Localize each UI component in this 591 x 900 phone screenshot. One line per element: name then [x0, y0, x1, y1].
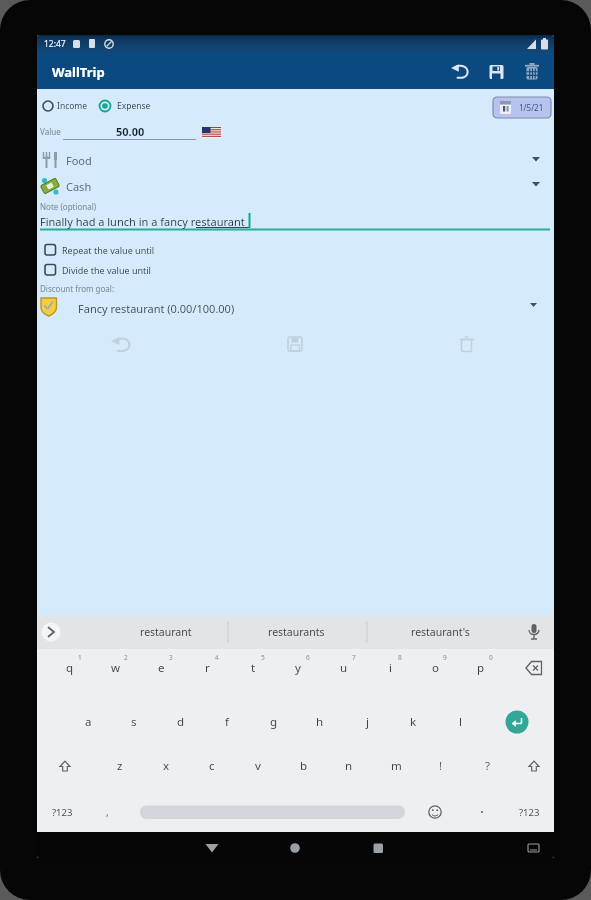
staticText: Food	[66, 153, 92, 168]
button[interactable]	[482, 58, 510, 86]
staticText: b	[300, 758, 308, 774]
staticText: Finally had a lunch in a fancy restauran…	[40, 214, 245, 229]
button[interactable]: u	[331, 658, 357, 678]
button[interactable]	[140, 805, 405, 820]
button[interactable]	[98, 97, 154, 115]
staticText: 8	[398, 653, 402, 662]
staticText: 12:47	[44, 38, 66, 50]
button[interactable]: !	[428, 756, 454, 776]
staticText: 6	[306, 653, 310, 662]
button[interactable]: f	[214, 712, 240, 732]
button[interactable]: restaurant's	[382, 622, 498, 642]
button[interactable]	[364, 835, 392, 855]
staticText: j	[366, 714, 369, 730]
button[interactable]: ?123	[507, 803, 551, 821]
staticText: h	[316, 714, 324, 730]
button[interactable]	[40, 148, 550, 171]
button[interactable]: p	[468, 658, 494, 678]
staticText: z	[117, 758, 123, 774]
button[interactable]: restaurants	[238, 622, 354, 642]
staticText: ?123	[519, 806, 540, 819]
button[interactable]: i	[377, 658, 403, 678]
staticText: restaurant's	[411, 625, 470, 639]
staticText: 7	[352, 653, 356, 662]
button[interactable]	[198, 835, 226, 855]
staticText: 50.00	[116, 124, 145, 139]
staticText: 2	[124, 653, 128, 662]
button[interactable]: l	[447, 712, 473, 732]
staticText: d	[177, 714, 185, 730]
button[interactable]: a	[75, 712, 101, 732]
button[interactable]	[506, 711, 528, 733]
staticText: v	[255, 758, 261, 774]
button[interactable]: ?	[474, 756, 500, 776]
staticText: Note (optional)	[40, 201, 97, 212]
staticText: e	[158, 660, 165, 676]
staticText: restaurant	[140, 625, 192, 639]
button[interactable]: n	[336, 756, 362, 776]
button[interactable]: t	[240, 658, 266, 678]
staticText: q	[66, 660, 74, 676]
staticText: i	[389, 660, 392, 676]
staticText: ?123	[52, 806, 73, 819]
staticText: n	[345, 758, 353, 774]
button[interactable]	[41, 97, 91, 115]
button[interactable]: b	[291, 756, 317, 776]
staticText: k	[410, 714, 417, 730]
staticText: ?	[485, 758, 490, 774]
button[interactable]: s	[121, 712, 147, 732]
staticText: w	[111, 660, 121, 676]
staticText: Divide the value until	[62, 264, 151, 276]
button[interactable]	[518, 58, 546, 86]
button[interactable]: y	[285, 658, 311, 678]
button[interactable]: v	[245, 756, 271, 776]
button[interactable]: m	[383, 756, 409, 776]
button[interactable]	[41, 241, 201, 259]
button[interactable]	[40, 174, 550, 197]
staticText: o	[432, 660, 439, 676]
staticText: 0	[489, 653, 493, 662]
button[interactable]: ?123	[40, 803, 84, 821]
staticText: !	[439, 758, 443, 774]
button[interactable]: h	[307, 712, 333, 732]
button[interactable]: j	[354, 712, 380, 732]
staticText: 1	[78, 653, 82, 662]
staticText: WallTrip	[52, 63, 105, 81]
staticText: y	[295, 660, 301, 676]
button[interactable]: restaurant	[111, 622, 221, 642]
staticText: 4	[215, 653, 219, 662]
staticText: Expense	[117, 100, 151, 112]
staticText: Cash	[66, 179, 92, 194]
staticText: c	[209, 758, 215, 774]
button[interactable]: d	[168, 712, 194, 732]
staticText: Income	[57, 100, 88, 112]
button[interactable]: o	[422, 658, 448, 678]
staticText: u	[340, 660, 348, 676]
button[interactable]: e	[148, 658, 174, 678]
button[interactable]	[281, 835, 309, 855]
button[interactable]: c	[199, 756, 225, 776]
staticText: f	[225, 714, 229, 730]
staticText: 5	[261, 653, 265, 662]
staticText: a	[85, 714, 92, 730]
staticText: 3	[169, 653, 173, 662]
button[interactable]: k	[400, 712, 426, 732]
staticText: l	[459, 714, 462, 730]
staticText: s	[131, 714, 137, 730]
button[interactable]: r	[194, 658, 220, 678]
button[interactable]: g	[261, 712, 287, 732]
button[interactable]: q	[57, 658, 83, 678]
staticText: x	[163, 758, 170, 774]
staticText: r	[205, 660, 210, 676]
staticText: Repeat the value until	[62, 244, 155, 256]
staticText: p	[477, 660, 485, 676]
button[interactable]: w	[103, 658, 129, 678]
button[interactable]: z	[107, 756, 133, 776]
button[interactable]	[40, 293, 550, 317]
button[interactable]: x	[153, 756, 179, 776]
button[interactable]	[41, 261, 201, 279]
staticText: 9	[443, 653, 447, 662]
button[interactable]	[447, 58, 475, 86]
button[interactable]: 1/5/21	[507, 98, 554, 116]
staticText: ,	[106, 805, 109, 819]
